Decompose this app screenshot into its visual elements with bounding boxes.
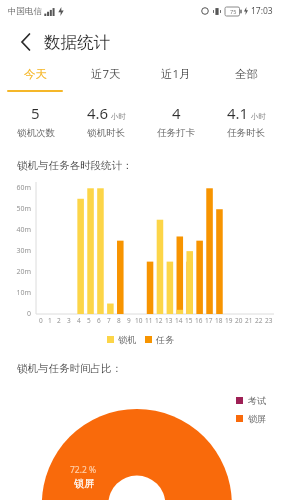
- staticText: 锁屏: [74, 477, 94, 490]
- staticText: 11: [145, 316, 153, 325]
- staticText: 22: [255, 316, 263, 325]
- staticText: 10m: [2, 288, 31, 298]
- staticText: 5: [31, 103, 40, 123]
- staticText: 30m: [2, 246, 31, 256]
- staticText: 锁机与任务各时段统计：: [17, 159, 133, 172]
- staticText: 75: [230, 8, 237, 15]
- staticText: 17: [205, 316, 213, 325]
- button[interactable]: 近1月: [141, 62, 211, 86]
- staticText: 12: [155, 316, 163, 325]
- button[interactable]: Back: [13, 29, 39, 55]
- staticText: 中国电信: [8, 6, 42, 17]
- staticText: 4: [77, 316, 81, 325]
- staticText: 4.6: [87, 103, 109, 123]
- button[interactable]: 今天: [0, 62, 71, 86]
- staticText: 20: [235, 316, 243, 325]
- staticText: 任务打卡: [157, 127, 195, 139]
- staticText: 10: [135, 316, 143, 325]
- staticText: 20m: [2, 267, 31, 277]
- staticText: 18: [215, 316, 223, 325]
- staticText: 9: [127, 316, 131, 325]
- staticText: 6: [97, 316, 101, 325]
- staticText: 14: [175, 316, 183, 325]
- staticText: 5: [87, 316, 91, 325]
- staticText: 16: [195, 316, 203, 325]
- staticText: 2: [57, 316, 61, 325]
- staticText: 近1月: [161, 66, 191, 82]
- staticText: 7: [107, 316, 111, 325]
- staticText: 19: [225, 316, 233, 325]
- staticText: 60m: [2, 183, 31, 193]
- staticText: 今天: [24, 67, 47, 81]
- staticText: 4.1: [227, 103, 249, 123]
- staticText: 锁机时长: [87, 127, 125, 139]
- staticText: 任务时长: [227, 127, 265, 139]
- staticText: 0: [39, 316, 43, 325]
- staticText: 锁机次数: [17, 127, 55, 139]
- staticText: 4: [172, 103, 181, 123]
- button[interactable]: 近7天: [71, 62, 141, 86]
- staticText: 3: [67, 316, 71, 325]
- staticText: 全部: [235, 67, 258, 81]
- staticText: 72.2 %: [70, 464, 97, 476]
- staticText: 考试: [248, 395, 266, 406]
- staticText: 8: [117, 316, 121, 325]
- staticText: 任务: [156, 334, 174, 345]
- staticText: 15: [185, 316, 193, 325]
- staticText: 小时: [251, 112, 266, 121]
- staticText: 13: [165, 316, 173, 325]
- button[interactable]: 全部: [211, 62, 281, 86]
- staticText: 小时: [111, 112, 126, 121]
- staticText: 锁机: [118, 334, 136, 345]
- staticText: 锁屏: [248, 413, 266, 424]
- staticText: 近7天: [91, 66, 121, 82]
- staticText: 23: [265, 316, 273, 325]
- staticText: 21: [245, 316, 253, 325]
- staticText: 17:03: [251, 5, 273, 17]
- staticText: 锁机与任务时间占比：: [17, 362, 122, 375]
- staticText: 0: [2, 309, 31, 319]
- staticText: 40m: [2, 225, 31, 235]
- staticText: 1: [48, 316, 52, 325]
- staticText: 50m: [2, 204, 31, 214]
- staticText: 数据统计: [44, 32, 110, 53]
